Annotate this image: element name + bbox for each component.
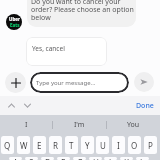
staticText: I: [117, 140, 120, 151]
button[interactable]: D: [41, 157, 54, 160]
button[interactable]: Done: [128, 97, 160, 115]
staticText: I'm: [74, 120, 85, 130]
button[interactable]: O: [128, 136, 141, 154]
button[interactable]: R: [49, 136, 62, 154]
staticText: T: [69, 140, 74, 151]
staticText: S: [29, 157, 34, 160]
staticText: L: [140, 157, 145, 160]
button[interactable]: G: [73, 157, 86, 160]
button[interactable]: Type your message...: [30, 72, 129, 93]
staticText: You: [127, 120, 140, 130]
staticText: O: [131, 140, 138, 151]
button[interactable]: Yes, cancel: [26, 37, 107, 66]
staticText: Yes, cancel: [32, 44, 65, 53]
button[interactable]: K: [120, 157, 133, 160]
staticText: U: [100, 140, 106, 151]
staticText: Q: [4, 140, 11, 151]
button[interactable]: I: [0, 115, 52, 135]
staticText: P: [148, 140, 153, 151]
staticText: R: [53, 140, 58, 151]
staticText: Do you want to cancel your order? Please…: [31, 0, 137, 22]
staticText: H: [93, 157, 99, 160]
button[interactable]: W: [17, 136, 30, 154]
button[interactable]: H: [89, 157, 102, 160]
staticText: E: [37, 140, 42, 151]
button[interactable]: J: [104, 157, 117, 160]
staticText: W: [20, 140, 28, 151]
staticText: I: [25, 120, 28, 130]
staticText: K: [124, 157, 129, 160]
button[interactable]: F: [57, 157, 70, 160]
button[interactable]: You: [107, 115, 160, 135]
button[interactable]: S: [25, 157, 38, 160]
staticText: Done: [136, 101, 154, 111]
button[interactable]: A: [9, 157, 22, 160]
button[interactable]: Next field: [20, 98, 35, 113]
staticText: Y: [85, 140, 90, 151]
button[interactable]: T: [65, 136, 78, 154]
staticText: Uber: [9, 16, 20, 22]
button[interactable]: Previous field: [4, 98, 19, 113]
staticText: D: [45, 157, 51, 160]
button[interactable]: Q: [1, 136, 14, 154]
button[interactable]: Add attachment: [5, 72, 26, 93]
button[interactable]: P: [144, 136, 157, 154]
button[interactable]: I'm: [53, 115, 106, 135]
button[interactable]: L: [136, 157, 149, 160]
button[interactable]: Y: [81, 136, 94, 154]
button[interactable]: U: [96, 136, 109, 154]
button[interactable]: I: [112, 136, 125, 154]
staticText: J: [109, 157, 112, 160]
button[interactable]: E: [33, 136, 46, 154]
staticText: Type your message...: [36, 79, 96, 87]
staticText: A: [13, 157, 19, 160]
staticText: Eats: [10, 22, 20, 28]
staticText: G: [77, 157, 83, 160]
staticText: F: [61, 157, 66, 160]
button[interactable]: Send: [134, 72, 154, 92]
